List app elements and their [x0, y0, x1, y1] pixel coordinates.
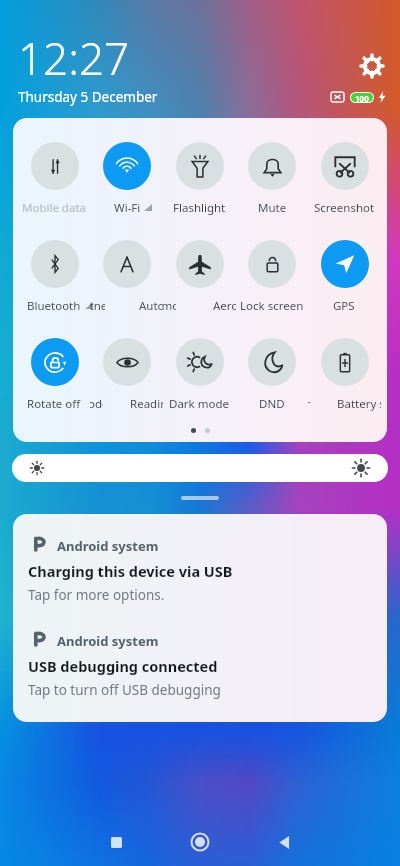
staticText: Mute [258, 200, 287, 216]
button[interactable] [18, 142, 91, 214]
staticText: GPS [333, 298, 355, 314]
button[interactable] [90, 240, 163, 312]
staticText: Thursday 5 December [18, 88, 158, 106]
button[interactable]: Android system [13, 514, 387, 606]
staticText: Aeroplane mode [213, 298, 236, 314]
staticText: Flashlight [173, 200, 226, 216]
button[interactable] [308, 338, 381, 410]
staticText: Reading mode [130, 396, 163, 412]
staticText: Rotate off [27, 396, 81, 412]
button[interactable]: Home [168, 818, 232, 866]
button[interactable] [308, 142, 381, 214]
button[interactable]: Recents [84, 818, 148, 866]
staticText: Bluetooth [27, 298, 81, 314]
button[interactable] [18, 338, 91, 410]
button[interactable] [90, 142, 163, 214]
staticText: Reading mode [90, 396, 103, 412]
button[interactable]: Android system [13, 609, 387, 701]
staticText: Screenshot [314, 200, 375, 216]
staticText: Lock screen [240, 298, 304, 314]
staticText: Auto brightness [139, 298, 163, 314]
staticText: USB debugging connected [28, 656, 218, 676]
staticText: Battery saver [337, 396, 381, 412]
staticText: Battery saver [308, 396, 311, 412]
button[interactable] [235, 338, 308, 410]
button[interactable] [18, 240, 91, 312]
staticText: DND [259, 396, 285, 412]
staticText: Android system [57, 632, 159, 650]
button[interactable]: Settings [360, 54, 384, 78]
button[interactable] [163, 338, 236, 410]
button[interactable] [90, 338, 163, 410]
staticText: Aeroplane mode [163, 298, 176, 314]
staticText: Wi-Fi [114, 200, 141, 216]
staticText: Tap to turn off USB debugging [28, 681, 221, 699]
staticText: Tap for more options. [28, 586, 165, 604]
staticText: Auto brightness [90, 298, 105, 314]
button[interactable] [235, 240, 308, 312]
button[interactable] [163, 240, 236, 312]
button[interactable]: Back [252, 818, 316, 866]
button[interactable]: Brightness [12, 454, 388, 482]
staticText: Charging this device via USB [28, 561, 233, 581]
button[interactable] [235, 142, 308, 214]
button[interactable] [308, 240, 381, 312]
staticText: 12:27 [18, 28, 130, 88]
button[interactable] [163, 142, 236, 214]
staticText: 100 [355, 93, 369, 102]
staticText: Dark mode [169, 396, 229, 412]
staticText: Android system [57, 537, 159, 555]
staticText: Mobile data [22, 200, 86, 216]
